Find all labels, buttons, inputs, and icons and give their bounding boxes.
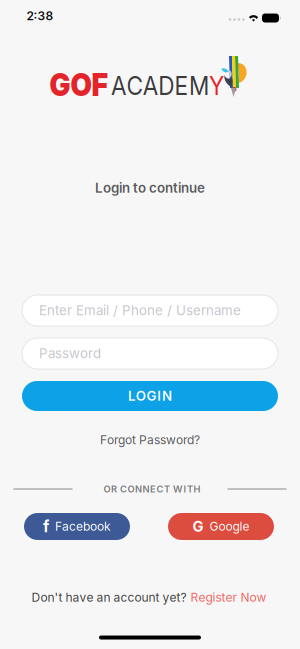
staticText: G	[192, 518, 203, 535]
staticText: ACADEM	[111, 72, 209, 99]
staticText: Register Now	[190, 590, 266, 605]
button[interactable]: G	[168, 513, 274, 540]
staticText: Y	[209, 72, 224, 99]
button[interactable]: Forgot Password?	[100, 433, 200, 447]
staticText: OR CONNECT WITH	[103, 483, 200, 494]
staticText: GOF	[49, 68, 108, 101]
staticText: Login to continue	[95, 180, 205, 196]
staticText: 2:38	[26, 9, 53, 23]
button[interactable]: LOGIN	[22, 381, 278, 411]
staticText: f	[43, 517, 49, 536]
staticText: Forgot Password?	[100, 433, 200, 447]
staticText: LOGIN	[128, 388, 172, 404]
staticText: Password	[39, 346, 101, 361]
staticText: Google	[209, 519, 249, 534]
button[interactable]: Don't have an account yet?	[31, 590, 266, 605]
staticText: Facebook	[55, 519, 111, 534]
button[interactable]: Enter Email / Phone / Username	[22, 295, 278, 326]
button[interactable]: Password	[22, 338, 278, 369]
staticText: Don't have an account yet?	[31, 590, 186, 605]
button[interactable]: f	[24, 513, 130, 540]
staticText: Enter Email / Phone / Username	[39, 303, 241, 318]
